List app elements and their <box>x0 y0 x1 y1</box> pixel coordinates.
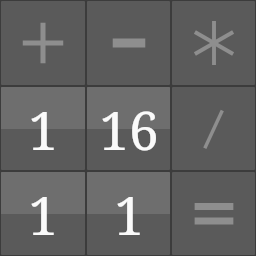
button[interactable]: 1 <box>1 172 85 255</box>
button[interactable]: Divide <box>172 87 255 170</box>
staticText: 1 <box>28 178 58 250</box>
button[interactable]: Multiply <box>172 1 255 85</box>
button[interactable]: Equals <box>172 172 255 255</box>
button[interactable]: 1 <box>1 87 85 170</box>
staticText: 1 <box>114 178 144 250</box>
button[interactable]: 1 <box>87 172 170 255</box>
staticText: 16 <box>99 93 159 165</box>
button[interactable]: Plus <box>1 1 85 85</box>
staticText: 1 <box>28 93 58 165</box>
button[interactable]: Minus <box>87 1 170 85</box>
button[interactable]: 16 <box>87 87 170 170</box>
